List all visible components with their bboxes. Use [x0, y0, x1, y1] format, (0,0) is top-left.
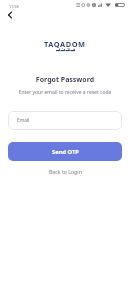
staticText: Enter your email to receive a reset code — [0, 89, 130, 96]
staticText: TAQADOM — [44, 39, 86, 49]
staticText: Back to Login — [49, 168, 82, 175]
staticText: Email — [17, 117, 30, 124]
staticText: Forgot Password — [0, 75, 130, 85]
staticText: 11:58 — [9, 4, 19, 9]
button[interactable]: Back to Login — [45, 165, 86, 178]
button[interactable]: Send OTP — [8, 142, 122, 161]
button[interactable]: Email — [8, 111, 122, 130]
staticText: Send OTP — [52, 148, 79, 156]
button[interactable]: Back — [2, 7, 17, 22]
